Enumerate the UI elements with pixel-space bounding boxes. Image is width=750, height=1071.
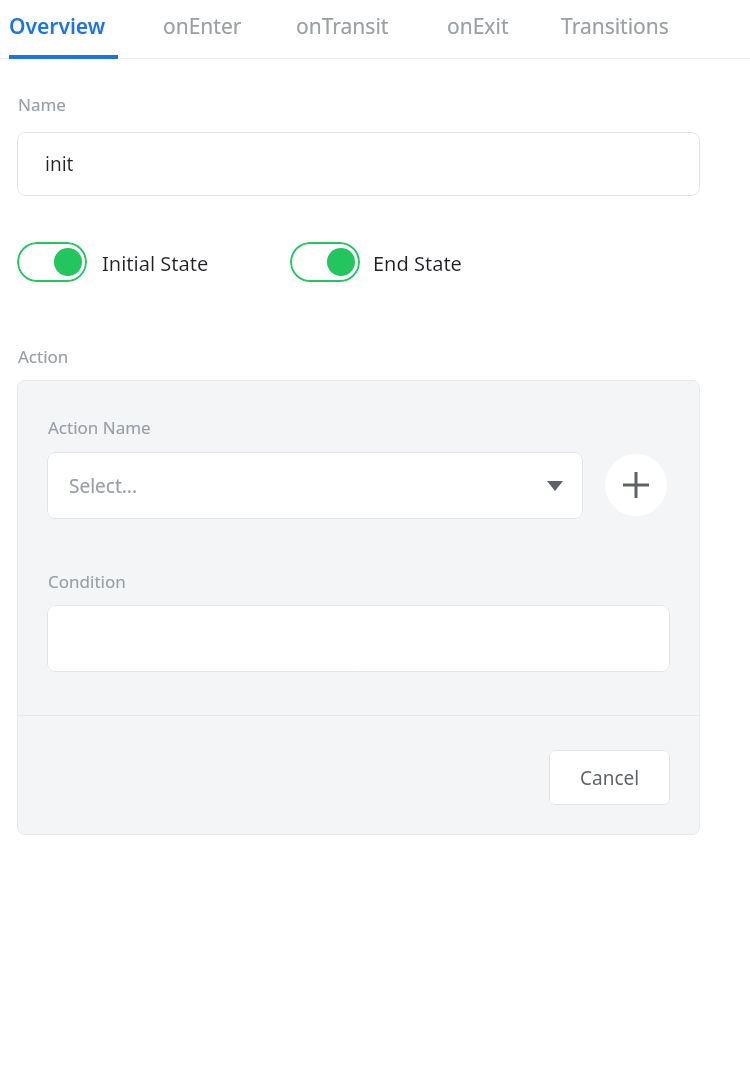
button[interactable] xyxy=(290,242,360,282)
button[interactable]: Add action xyxy=(605,454,667,516)
button[interactable] xyxy=(17,242,87,282)
button[interactable]: init xyxy=(17,132,700,196)
staticText: Condition xyxy=(48,570,126,593)
button[interactable]: Transitions xyxy=(561,0,687,58)
staticText: Cancel xyxy=(580,765,640,791)
staticText: Overview xyxy=(9,12,106,41)
staticText: init xyxy=(45,151,74,177)
button[interactable]: Cancel xyxy=(549,750,670,805)
staticText: Transitions xyxy=(561,12,669,41)
staticText: Name xyxy=(18,93,66,116)
staticText: Action xyxy=(18,345,69,368)
button[interactable] xyxy=(47,605,670,672)
button[interactable]: onExit xyxy=(447,0,517,58)
staticText: onExit xyxy=(447,12,509,41)
button[interactable]: onTransit xyxy=(296,0,402,58)
staticText: Select... xyxy=(69,473,138,499)
staticText: Initial State xyxy=(102,250,209,277)
staticText: End State xyxy=(373,250,462,277)
button[interactable]: Overview xyxy=(9,0,118,58)
staticText: onTransit xyxy=(296,12,389,41)
staticText: onEnter xyxy=(163,12,242,41)
button[interactable]: onEnter xyxy=(163,0,251,58)
button[interactable]: Select... xyxy=(47,452,583,519)
staticText: Action Name xyxy=(48,416,151,439)
